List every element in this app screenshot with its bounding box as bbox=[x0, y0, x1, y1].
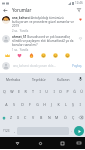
staticText: N bbox=[48, 115, 51, 120]
button[interactable]: Emoji bbox=[25, 51, 37, 59]
button[interactable]: Comma bbox=[12, 124, 17, 137]
button[interactable]: I bbox=[50, 85, 57, 98]
staticText: R bbox=[24, 89, 27, 94]
button[interactable]: Emoji bbox=[49, 51, 61, 59]
button[interactable]: T bbox=[29, 85, 36, 98]
button[interactable]: P bbox=[64, 85, 71, 98]
button[interactable]: Ş bbox=[69, 98, 76, 111]
button[interactable]: B bbox=[37, 111, 45, 124]
staticText: S bbox=[13, 102, 15, 107]
button[interactable]: M bbox=[53, 111, 61, 124]
button[interactable]: R bbox=[22, 85, 29, 98]
staticText: M bbox=[55, 115, 59, 120]
staticText: 2 sa. Yanıtla bbox=[12, 29, 29, 33]
staticText: ana_kahveci olarak yorum ekle... bbox=[13, 64, 56, 68]
staticText: G bbox=[36, 102, 39, 107]
button[interactable]: L bbox=[62, 98, 69, 111]
staticText: F bbox=[29, 102, 31, 107]
button[interactable]: Ç bbox=[69, 111, 77, 124]
button[interactable]: Shift bbox=[0, 111, 8, 124]
staticText: O bbox=[59, 89, 62, 94]
button[interactable]: ana_kahveci olarak yorum ekle... bbox=[12, 64, 71, 68]
staticText: D bbox=[21, 102, 24, 107]
staticText: Q bbox=[3, 89, 6, 94]
staticText: Teşekkür bbox=[32, 77, 46, 81]
staticText: B bbox=[40, 115, 43, 120]
button[interactable]: V bbox=[29, 111, 37, 124]
button[interactable]: Like bbox=[77, 35, 83, 41]
staticText: ?123 bbox=[3, 129, 10, 133]
button[interactable]: Emoji bbox=[13, 51, 25, 59]
button[interactable]: Ö bbox=[61, 111, 69, 124]
button[interactable]: C bbox=[22, 111, 29, 124]
staticText: 1 sa. Yanıtla bbox=[12, 48, 29, 52]
button[interactable]: K bbox=[55, 98, 62, 111]
button[interactable]: Emoji bbox=[1, 51, 13, 59]
button[interactable]: F bbox=[26, 98, 34, 111]
button[interactable]: Home bbox=[29, 137, 51, 149]
button[interactable]: W bbox=[8, 85, 15, 98]
button[interactable]: Z bbox=[8, 111, 15, 124]
button[interactable]: Like bbox=[77, 16, 83, 22]
staticText: U bbox=[45, 89, 48, 94]
staticText: 12:46 bbox=[75, 1, 83, 5]
button[interactable]: Backspace bbox=[77, 111, 85, 124]
button[interactable]: O bbox=[57, 85, 64, 98]
button[interactable]: Emoji bbox=[61, 51, 73, 59]
button[interactable]: Teşekkür bbox=[26, 73, 51, 85]
button[interactable]: ?123 bbox=[1, 124, 12, 137]
staticText: V bbox=[32, 115, 35, 120]
button[interactable]: Merhaba bbox=[0, 73, 26, 85]
button[interactable]: S bbox=[10, 98, 18, 111]
staticText: . bbox=[71, 128, 72, 133]
staticText: Ü bbox=[80, 89, 83, 94]
button[interactable]: E bbox=[15, 85, 22, 98]
button[interactable]: I bbox=[36, 85, 43, 98]
staticText: T bbox=[32, 89, 34, 94]
button[interactable]: H bbox=[41, 98, 48, 111]
button[interactable]: U bbox=[43, 85, 50, 98]
staticText: Kullanın bbox=[57, 77, 70, 81]
button[interactable]: Kullanın bbox=[51, 73, 76, 85]
button[interactable]: Emoji bbox=[37, 51, 49, 59]
staticText: Yorumlar bbox=[12, 7, 32, 13]
button[interactable]: X bbox=[15, 111, 22, 124]
button[interactable]: ana_kahveci Antalya'dağı tümünüzü kutluy… bbox=[0, 14, 85, 33]
button[interactable]: Back bbox=[6, 137, 29, 149]
button[interactable]: G bbox=[34, 98, 41, 111]
staticText: , bbox=[14, 128, 15, 133]
button[interactable]: Keyboard bbox=[73, 137, 85, 149]
button[interactable]: Send bbox=[74, 126, 84, 136]
button[interactable]: Q bbox=[0, 85, 8, 98]
button[interactable]: Sort bbox=[75, 6, 83, 14]
staticText: K bbox=[57, 102, 60, 107]
staticText: A bbox=[5, 102, 8, 107]
button[interactable]: N bbox=[45, 111, 53, 124]
staticText: Ş bbox=[72, 102, 74, 107]
staticText: Ö bbox=[64, 115, 67, 120]
button[interactable]: A bbox=[2, 98, 10, 111]
button[interactable]: Voice input bbox=[76, 73, 85, 85]
staticText: L bbox=[65, 102, 67, 107]
staticText: Ç bbox=[72, 115, 75, 120]
staticText: I bbox=[53, 89, 55, 94]
button[interactable]: Ü bbox=[78, 85, 85, 98]
button[interactable]: J bbox=[48, 98, 55, 111]
staticText: Z bbox=[10, 115, 13, 120]
staticText: E bbox=[18, 89, 20, 94]
button[interactable]: Recents bbox=[51, 137, 73, 149]
staticText: ahmet_51 Bunudiscord ve çok kazandılar, … bbox=[12, 35, 76, 47]
staticText: P bbox=[66, 89, 69, 94]
staticText: Merhaba bbox=[6, 77, 20, 81]
button[interactable]: Back bbox=[1, 6, 9, 14]
button[interactable]: ahmet_51 Bunudiscord ve çok kazandılar, … bbox=[0, 33, 85, 52]
staticText: W bbox=[10, 89, 14, 94]
staticText: J bbox=[51, 102, 52, 107]
button[interactable]: D bbox=[18, 98, 26, 111]
button[interactable]: Ğ bbox=[71, 85, 78, 98]
staticText: I bbox=[79, 102, 81, 107]
button[interactable]: I bbox=[76, 98, 83, 111]
button[interactable]: Paylaş bbox=[71, 64, 83, 68]
